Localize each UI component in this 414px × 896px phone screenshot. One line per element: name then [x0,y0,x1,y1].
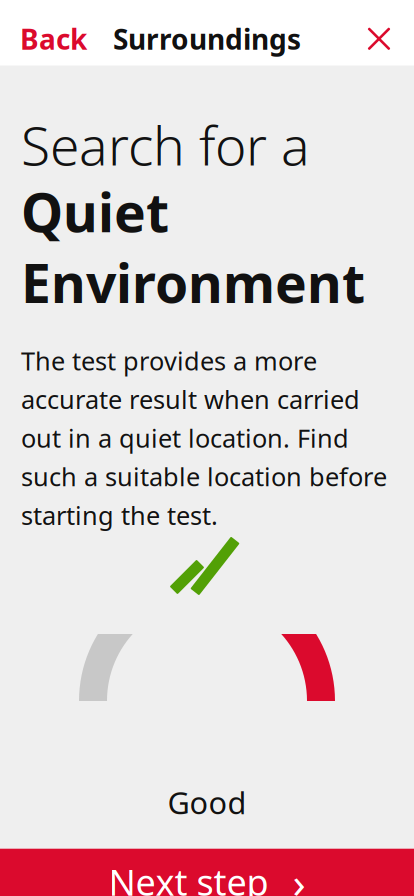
staticText: Search for a [21,109,310,180]
staticText: › [292,853,305,896]
staticText: Good [167,782,246,823]
staticText: Back [20,20,87,57]
staticText: Next step [108,858,268,896]
staticText: Quiet Environment [21,176,365,318]
staticText: Surroundings [113,20,301,57]
button[interactable]: Back [0,10,107,67]
staticText: The test provides a more accurate result… [21,344,387,532]
button[interactable]: Next step [0,849,414,896]
button[interactable]: Close [344,14,414,64]
